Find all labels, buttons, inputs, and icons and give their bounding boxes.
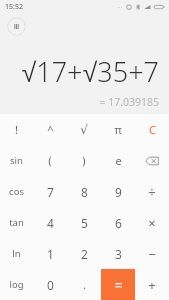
staticText: log	[9, 278, 24, 291]
button[interactable]: !	[0, 114, 33, 145]
button[interactable]: 5	[67, 207, 101, 238]
button[interactable]: sin	[0, 145, 33, 176]
staticText: tan	[9, 216, 24, 229]
staticText: ln	[12, 247, 21, 260]
button[interactable]: 2	[67, 238, 101, 269]
staticText: π	[114, 122, 122, 137]
staticText: 1	[47, 246, 54, 262]
button[interactable]: 4	[33, 207, 67, 238]
button[interactable]: −	[135, 238, 169, 269]
staticText: (	[48, 153, 52, 168]
button[interactable]: ÷	[135, 176, 169, 207]
button[interactable]: 3	[101, 238, 135, 269]
button[interactable]: 1	[33, 238, 67, 269]
button[interactable]: .	[67, 269, 101, 300]
button[interactable]: (	[33, 145, 67, 176]
button[interactable]: ×	[135, 207, 169, 238]
staticText: √17+√35+7	[21, 53, 159, 90]
button[interactable]: log	[0, 269, 33, 300]
button[interactable]: 0	[33, 269, 67, 300]
staticText: cos	[9, 185, 24, 198]
staticText: .	[83, 277, 86, 292]
button[interactable]: 9	[101, 176, 135, 207]
staticText: 9	[115, 184, 122, 200]
staticText: ÷	[148, 183, 156, 201]
button[interactable]: √	[67, 114, 101, 145]
button[interactable]: +	[135, 269, 169, 300]
staticText: !	[15, 122, 18, 137]
button[interactable]: e	[101, 145, 135, 176]
staticText: 15:52	[5, 2, 23, 12]
button[interactable]: =	[101, 269, 135, 300]
staticText: 6	[115, 215, 122, 231]
button[interactable]: Backspace	[135, 145, 169, 176]
staticText: = 17.039185	[99, 95, 159, 109]
button[interactable]: 7	[33, 176, 67, 207]
staticText: C	[149, 122, 156, 137]
staticText: 0	[47, 277, 54, 293]
button[interactable]: C	[135, 114, 169, 145]
staticText: 5	[81, 215, 88, 231]
staticText: √	[80, 123, 88, 137]
button[interactable]: )	[67, 145, 101, 176]
button[interactable]: 6	[101, 207, 135, 238]
staticText: 8	[81, 184, 88, 200]
button[interactable]: cos	[0, 176, 33, 207]
staticText: ×	[148, 214, 156, 232]
staticText: ^	[47, 122, 54, 137]
button[interactable]: ln	[0, 238, 33, 269]
staticText: e	[115, 153, 122, 168]
staticText: =	[114, 275, 123, 294]
staticText: 7	[47, 184, 54, 200]
staticText: +	[148, 276, 156, 294]
staticText: 4	[47, 215, 54, 231]
button[interactable]: 8	[67, 176, 101, 207]
staticText: 3	[115, 246, 122, 262]
button[interactable]: ^	[33, 114, 67, 145]
button[interactable]: π	[101, 114, 135, 145]
staticText: 2	[81, 246, 88, 262]
staticText: sin	[10, 154, 23, 167]
staticText: )	[82, 153, 86, 168]
staticText: −	[148, 245, 156, 263]
button[interactable]: Menu	[7, 17, 26, 36]
button[interactable]: tan	[0, 207, 33, 238]
